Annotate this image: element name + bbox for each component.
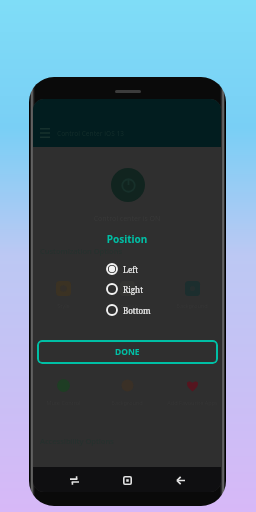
button[interactable]: Bottom (33, 300, 221, 320)
button[interactable]: Background (163, 281, 221, 309)
staticText: Right (123, 284, 144, 295)
button[interactable]: Right (33, 279, 221, 299)
staticText: Position (33, 232, 221, 246)
button[interactable]: Left (33, 259, 221, 279)
button[interactable]: Style (34, 281, 92, 309)
button[interactable]: Position (98, 281, 156, 309)
button[interactable]: Home (115, 468, 139, 492)
staticText: Position (117, 302, 138, 309)
staticText: Bottom (123, 305, 151, 316)
other: Menu (40, 128, 50, 138)
button[interactable]: Switch apps (62, 468, 86, 492)
button[interactable]: DONE (37, 340, 218, 364)
button[interactable]: Power toggle (111, 168, 145, 202)
button[interactable]: Back (168, 468, 192, 492)
staticText: Control Center iOS 13 (57, 129, 124, 138)
button[interactable]: Add Favourite Apps (163, 378, 221, 406)
staticText: Left (123, 264, 139, 275)
button[interactable]: Mute Control (34, 378, 92, 406)
staticText: DONE (115, 346, 140, 358)
